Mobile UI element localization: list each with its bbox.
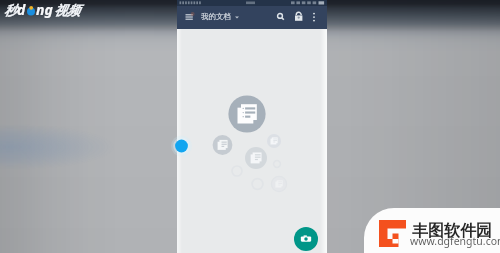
staticText: 丰图软件园 (412, 221, 492, 241)
staticText: 秒 (4, 2, 17, 18)
staticText: 我的文档 (201, 12, 231, 21)
button[interactable]: More options (306, 9, 322, 25)
staticText: 视频 (54, 2, 80, 18)
button[interactable]: Open navigation drawer (180, 9, 197, 26)
staticText: d (17, 0, 26, 19)
staticText: www.dgfengtu.com (410, 234, 500, 248)
staticText: ng (36, 0, 53, 19)
button[interactable]: Take photo (294, 227, 318, 251)
button[interactable]: Secure folder (290, 9, 307, 26)
button[interactable]: Search (272, 9, 289, 26)
